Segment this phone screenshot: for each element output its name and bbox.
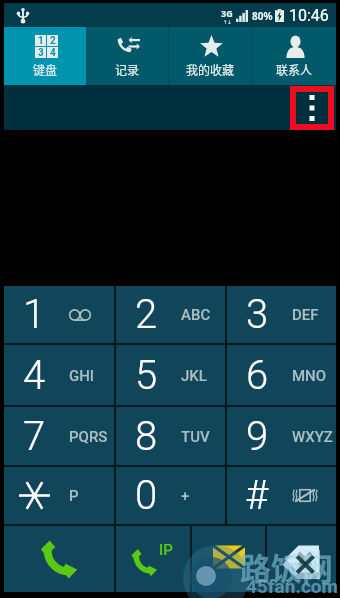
staticText: 2 bbox=[50, 35, 56, 46]
button[interactable]: Call bbox=[4, 526, 114, 592]
button[interactable]: 0 bbox=[116, 467, 225, 524]
staticText: 0 bbox=[135, 472, 158, 519]
staticText: GHI bbox=[69, 367, 95, 385]
staticText: 2 bbox=[135, 291, 158, 338]
staticText: 3G bbox=[221, 7, 233, 19]
staticText: ↑↓ bbox=[223, 19, 232, 25]
button[interactable]: IP Call bbox=[116, 526, 190, 592]
button[interactable]: 1 bbox=[4, 286, 114, 343]
staticText: 10:46 bbox=[289, 6, 329, 25]
button[interactable]: Send message bbox=[192, 526, 265, 592]
button[interactable]: 8 bbox=[116, 407, 225, 465]
staticText: WXYZ bbox=[292, 428, 333, 446]
staticText: 联系人 bbox=[276, 61, 313, 78]
staticText: PQRS bbox=[69, 428, 108, 446]
staticText: 我的收藏 bbox=[186, 61, 235, 78]
button[interactable]: More options bbox=[290, 86, 334, 130]
button[interactable]: 3 bbox=[227, 286, 336, 343]
staticText: DEF bbox=[292, 306, 319, 324]
button[interactable]: 我的收藏 bbox=[169, 27, 252, 85]
button[interactable]: 4 bbox=[4, 345, 114, 405]
staticText: IP bbox=[159, 541, 173, 559]
staticText: 1 bbox=[23, 291, 46, 338]
staticText: 3 bbox=[246, 291, 269, 338]
staticText: 记录 bbox=[115, 61, 140, 78]
button[interactable]: P bbox=[4, 467, 114, 524]
staticText: 4 bbox=[23, 352, 46, 399]
staticText: 路饭网 bbox=[240, 544, 333, 589]
staticText: 7 bbox=[23, 413, 46, 460]
button[interactable]: 6 bbox=[227, 345, 336, 405]
button[interactable]: 联系人 bbox=[253, 27, 336, 85]
button[interactable]: Delete bbox=[267, 526, 336, 592]
staticText: 80% bbox=[252, 9, 273, 23]
staticText: 6 bbox=[246, 352, 269, 399]
staticText: 5 bbox=[135, 352, 158, 399]
staticText: + bbox=[181, 487, 190, 505]
button[interactable]: # bbox=[227, 467, 336, 524]
staticText: 4 bbox=[50, 47, 56, 58]
button[interactable]: 2 bbox=[116, 286, 225, 343]
staticText: 1 bbox=[38, 35, 44, 46]
staticText: MNO bbox=[292, 367, 327, 385]
staticText: 8 bbox=[135, 413, 158, 460]
staticText: 9 bbox=[246, 413, 269, 460]
staticText: ABC bbox=[181, 306, 211, 324]
button[interactable]: 1 bbox=[4, 27, 86, 85]
staticText: # bbox=[245, 472, 269, 519]
staticText: JKL bbox=[181, 367, 207, 385]
button[interactable]: 5 bbox=[116, 345, 225, 405]
staticText: 3 bbox=[38, 47, 44, 58]
button[interactable]: 7 bbox=[4, 407, 114, 465]
staticText: 键盘 bbox=[33, 61, 58, 78]
button[interactable]: 9 bbox=[227, 407, 336, 465]
staticText: 45fan.com bbox=[246, 575, 339, 597]
staticText: TUV bbox=[181, 428, 210, 446]
button[interactable]: 记录 bbox=[86, 27, 168, 85]
staticText: P bbox=[69, 487, 79, 505]
